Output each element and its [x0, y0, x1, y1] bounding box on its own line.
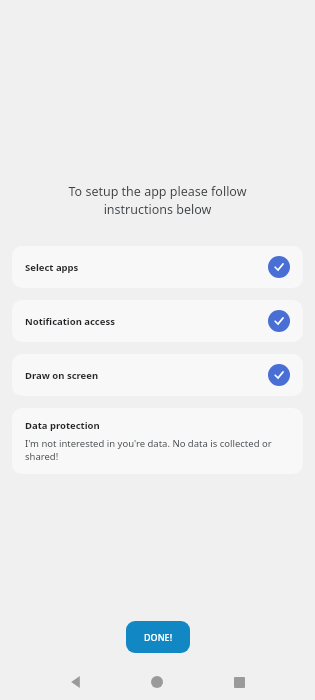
button[interactable]: Select apps [12, 246, 303, 288]
staticText: Notification access [25, 315, 115, 328]
button[interactable]: Completed [268, 364, 290, 386]
staticText: Select apps [25, 261, 79, 274]
staticText: To setup the app please follow instructi… [24, 183, 291, 218]
button[interactable]: Home [144, 669, 170, 695]
button[interactable]: Recent apps [226, 669, 252, 695]
staticText: Draw on screen [25, 369, 99, 382]
button[interactable]: Back [63, 669, 89, 695]
staticText: DONE! [144, 631, 173, 643]
button[interactable]: Data protection [12, 408, 303, 474]
button[interactable]: Draw on screen [12, 354, 303, 396]
staticText: Data protection [25, 419, 100, 432]
button[interactable]: Completed [268, 256, 290, 278]
button[interactable]: Notification access [12, 300, 303, 342]
staticText: I'm not interested in you're data. No da… [25, 437, 290, 463]
button[interactable]: Completed [268, 310, 290, 332]
button[interactable]: DONE! [126, 621, 190, 653]
